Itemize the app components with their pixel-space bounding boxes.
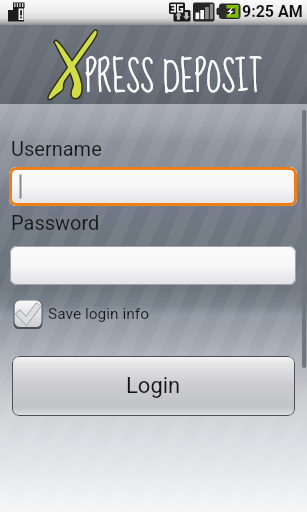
staticText: 9:25 AM [242,2,303,21]
button[interactable] [10,246,296,285]
staticText: Login [126,373,181,399]
staticText: Save login info [48,305,150,323]
other: Save login info [13,299,43,329]
staticText: PRESS DEPOSIT [85,43,263,113]
staticText: Username [11,137,102,160]
button[interactable]: Save login info [13,298,150,329]
button[interactable] [9,167,297,206]
button[interactable]: Login [12,356,295,416]
staticText: Password [11,211,100,234]
